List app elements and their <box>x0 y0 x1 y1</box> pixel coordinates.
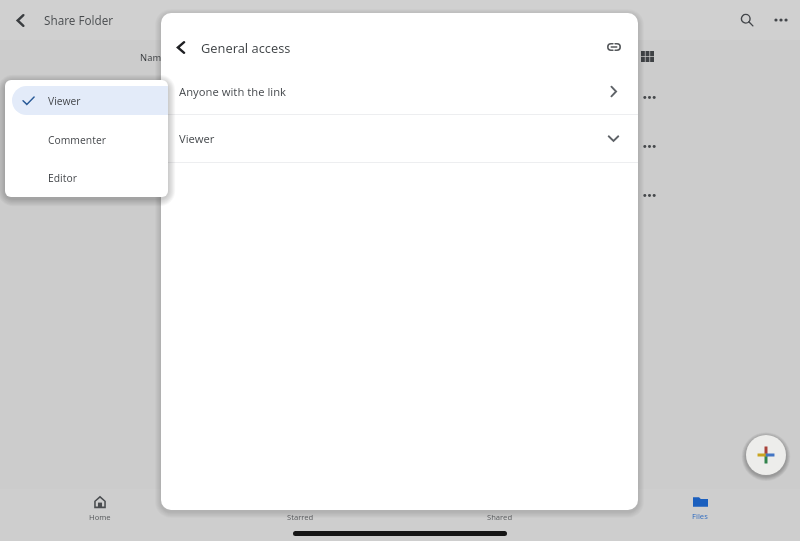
button[interactable]: Anyone with the link <box>161 68 638 114</box>
button[interactable]: Viewer <box>161 114 638 162</box>
staticText: General access <box>201 39 291 56</box>
staticText: Files <box>692 511 708 521</box>
button[interactable]: File options <box>637 85 661 109</box>
button[interactable]: Editor <box>12 163 168 192</box>
staticText: Viewer <box>48 94 81 108</box>
button[interactable]: File options <box>637 134 661 158</box>
staticText: Name <box>140 51 167 64</box>
button[interactable]: Commenter <box>12 125 168 154</box>
button[interactable]: More options <box>764 3 798 37</box>
staticText: Share Folder <box>44 12 114 28</box>
staticText: Anyone with the link <box>179 84 287 99</box>
staticText: Home <box>89 512 111 522</box>
button[interactable]: Back <box>164 31 197 64</box>
button[interactable]: Search <box>730 3 764 37</box>
button[interactable]: Create new <box>746 435 786 475</box>
staticText: Shared <box>487 512 513 522</box>
button[interactable]: Starred <box>200 492 400 541</box>
button[interactable]: Viewer <box>12 86 168 115</box>
button[interactable]: Grid view <box>636 45 658 67</box>
button[interactable]: Back <box>0 0 40 40</box>
button[interactable]: Files <box>600 492 800 541</box>
staticText: Editor <box>48 171 77 185</box>
staticText: Commenter <box>48 133 106 147</box>
button[interactable]: Copy link <box>600 33 628 61</box>
button[interactable]: File options <box>637 183 661 207</box>
staticText: Viewer <box>179 131 215 146</box>
button[interactable]: Shared <box>400 492 600 541</box>
button[interactable]: Home <box>0 492 200 541</box>
staticText: Starred <box>287 512 314 522</box>
